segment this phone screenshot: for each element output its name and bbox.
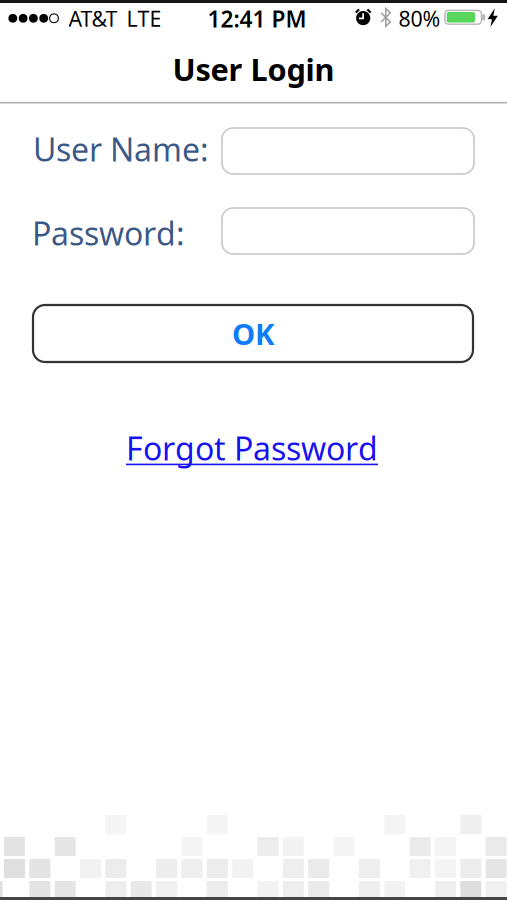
staticText: Password: bbox=[32, 212, 185, 254]
staticText: OK bbox=[232, 314, 274, 353]
button[interactable]: Forgot Password bbox=[126, 427, 378, 469]
button[interactable]: OK bbox=[33, 305, 473, 362]
staticText: AT&T bbox=[68, 4, 117, 33]
button[interactable]: Password text field bbox=[222, 208, 474, 254]
staticText: 12:41 PM bbox=[207, 4, 306, 34]
staticText: User Login bbox=[172, 49, 334, 89]
staticText: 80% bbox=[398, 4, 440, 33]
button[interactable]: User Name text field bbox=[222, 128, 474, 174]
staticText: User Name: bbox=[33, 128, 209, 170]
staticText: LTE bbox=[126, 4, 161, 33]
staticText: Forgot Password bbox=[126, 427, 378, 469]
